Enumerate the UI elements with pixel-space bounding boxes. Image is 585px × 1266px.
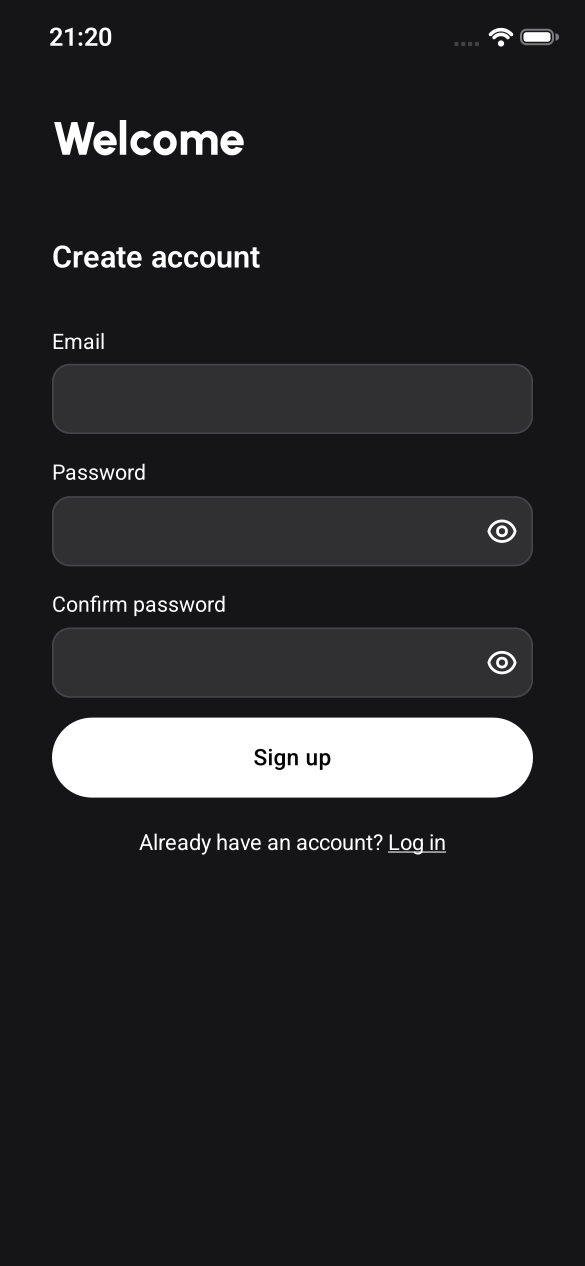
button[interactable] xyxy=(482,511,522,551)
button[interactable] xyxy=(52,364,533,434)
staticText: 21:20 xyxy=(49,22,112,51)
button[interactable] xyxy=(52,496,533,566)
button[interactable]: Already have an account? Log in xyxy=(139,830,446,855)
staticText: Create account xyxy=(52,239,260,274)
button[interactable] xyxy=(52,628,533,698)
staticText: Already have an account? Log in xyxy=(139,830,446,855)
staticText: Confirm password xyxy=(52,592,226,617)
button[interactable]: Sign up xyxy=(52,718,533,798)
button[interactable] xyxy=(482,643,522,683)
staticText: Email xyxy=(52,329,105,354)
staticText: Sign up xyxy=(253,745,331,771)
staticText: Welcome xyxy=(52,110,245,166)
staticText: Password xyxy=(52,460,146,485)
